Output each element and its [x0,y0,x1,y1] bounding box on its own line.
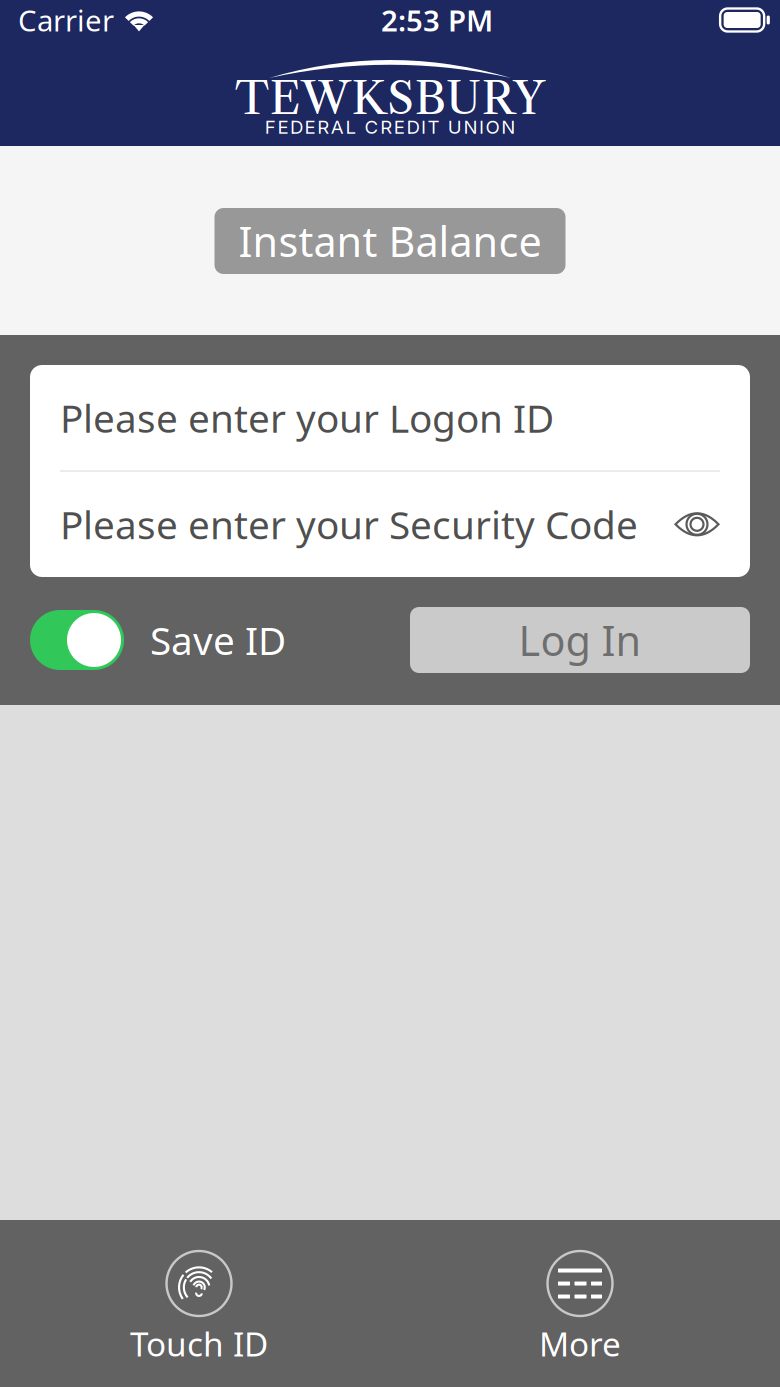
button[interactable]: Log In [410,607,750,673]
staticText: TEWKSBURY [235,70,545,126]
button[interactable]: Save ID [30,607,286,673]
staticText: Save ID [150,614,286,666]
button[interactable]: Touch ID [99,1249,299,1358]
staticText: Instant Balance [238,214,541,268]
staticText: More [539,1321,621,1366]
staticText: FEDERAL CREDIT UNION [265,116,515,138]
staticText: Please enter your Security Code [60,499,638,550]
staticText: Touch ID [130,1321,268,1366]
staticText: Please enter your Logon ID [60,392,554,443]
staticText: Carrier [18,0,114,39]
button[interactable]: Instant Balance [214,208,565,274]
button[interactable]: Show security code [674,509,720,539]
staticText: Log In [518,613,641,667]
button[interactable]: More [480,1249,680,1358]
staticText: 2:53 PM [381,0,493,39]
